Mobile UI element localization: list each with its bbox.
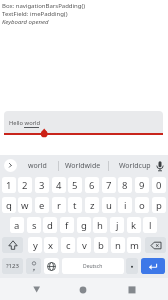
button[interactable]: Deutsch <box>62 258 124 274</box>
staticText: 8 <box>122 179 128 192</box>
staticText: j <box>116 219 119 232</box>
staticText: Deutsch <box>83 263 103 270</box>
staticText: y <box>33 239 38 252</box>
button[interactable]: 3 <box>35 177 49 193</box>
staticText: m <box>130 239 139 252</box>
staticText: 2 <box>22 179 28 192</box>
button[interactable]: v <box>77 237 91 253</box>
button[interactable] <box>141 258 165 274</box>
button[interactable]: k <box>127 217 141 233</box>
button[interactable]: y <box>28 237 42 253</box>
staticText: w <box>21 199 29 212</box>
button[interactable]: 0 <box>152 177 166 193</box>
staticText: d <box>47 219 53 232</box>
button[interactable]: 9 <box>135 177 149 193</box>
button[interactable]: j <box>110 217 124 233</box>
button[interactable]: 6 <box>85 177 99 193</box>
button[interactable]: u <box>102 197 116 213</box>
staticText: 5 <box>72 179 78 192</box>
staticText: Keyboard opened <box>2 18 49 26</box>
button[interactable]: r <box>52 197 66 213</box>
staticText: e <box>39 199 45 212</box>
staticText: 4 <box>56 179 62 192</box>
button[interactable]: h <box>93 217 107 233</box>
staticText: Box: navigationBarsPadding() <box>2 2 86 10</box>
button[interactable] <box>126 258 138 274</box>
staticText: 7 <box>106 179 112 192</box>
staticText: s <box>32 219 37 232</box>
staticText: 1 <box>6 179 12 192</box>
staticText: 9 <box>139 179 145 192</box>
button[interactable]: 2 <box>18 177 32 193</box>
button[interactable]: ?123 <box>2 258 23 274</box>
button[interactable]: s <box>27 217 41 233</box>
button[interactable] <box>26 258 41 274</box>
staticText: z <box>90 199 95 212</box>
button[interactable] <box>127 285 137 295</box>
button[interactable] <box>32 285 42 295</box>
button[interactable]: c <box>61 237 75 253</box>
button[interactable]: p <box>152 197 166 213</box>
button[interactable]: w <box>18 197 32 213</box>
staticText: t <box>73 199 77 212</box>
button[interactable]: a <box>10 217 24 233</box>
button[interactable] <box>4 159 17 172</box>
button[interactable]: g <box>77 217 91 233</box>
staticText: b <box>98 239 104 252</box>
staticText: i <box>124 199 127 212</box>
staticText: n <box>115 239 121 252</box>
button[interactable]: z <box>85 197 99 213</box>
button[interactable] <box>78 285 88 295</box>
staticText: Worldcup <box>119 161 151 171</box>
button[interactable]: q <box>2 197 16 213</box>
button[interactable]: x <box>44 237 58 253</box>
staticText: a <box>14 219 20 232</box>
button[interactable]: l <box>143 217 157 233</box>
button[interactable]: Worldwide <box>59 158 107 173</box>
button[interactable]: b <box>94 237 108 253</box>
button[interactable]: n <box>111 237 125 253</box>
button[interactable]: 4 <box>52 177 66 193</box>
staticText: 6 <box>89 179 95 192</box>
staticText: 3 <box>39 179 45 192</box>
button[interactable]: 8 <box>118 177 132 193</box>
button[interactable]: world <box>17 158 57 173</box>
staticText: c <box>66 239 71 252</box>
staticText: q <box>6 199 12 212</box>
staticText: ?123 <box>6 262 19 270</box>
staticText: world <box>28 161 47 171</box>
staticText: Hello world <box>9 119 41 127</box>
button[interactable]: 1 <box>2 177 16 193</box>
button[interactable]: 7 <box>102 177 116 193</box>
staticText: Worldwide <box>65 161 101 171</box>
button[interactable]: 5 <box>68 177 82 193</box>
button[interactable]: i <box>118 197 132 213</box>
button[interactable]: f <box>60 217 74 233</box>
button[interactable]: d <box>43 217 57 233</box>
button[interactable]: Worldcup <box>110 158 159 173</box>
button[interactable]: o <box>135 197 149 213</box>
button[interactable]: m <box>127 237 141 253</box>
button[interactable] <box>2 237 23 253</box>
staticText: h <box>97 219 103 232</box>
button[interactable] <box>145 237 166 253</box>
staticText: r <box>57 199 61 212</box>
staticText: u <box>106 199 112 212</box>
staticText: l <box>149 219 152 232</box>
staticText: k <box>131 219 137 232</box>
button[interactable] <box>155 160 165 173</box>
button[interactable]: t <box>68 197 82 213</box>
staticText: 0 <box>156 179 162 192</box>
staticText: TextField: imePadding() <box>2 10 68 18</box>
staticText: p <box>156 199 162 212</box>
button[interactable] <box>44 258 59 274</box>
button[interactable]: Hello world <box>4 111 163 133</box>
staticText: o <box>139 199 145 212</box>
staticText: f <box>65 219 69 232</box>
staticText: x <box>48 239 54 252</box>
staticText: g <box>81 219 87 232</box>
button[interactable]: e <box>35 197 49 213</box>
staticText: v <box>82 239 87 252</box>
